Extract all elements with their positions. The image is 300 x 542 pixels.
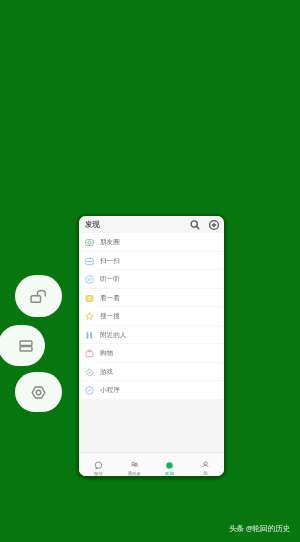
staticText: 我 xyxy=(203,471,208,476)
button[interactable]: 附近的人 xyxy=(79,326,224,344)
staticText: 附近的人 xyxy=(100,331,127,339)
button[interactable]: 发现 xyxy=(152,453,186,476)
button[interactable]: 听一听 xyxy=(79,270,224,288)
button[interactable]: 购物 xyxy=(79,344,224,362)
button[interactable]: 我 xyxy=(188,453,222,476)
staticText: 微信 xyxy=(94,471,103,476)
staticText: 搜一搜 xyxy=(100,312,120,320)
button[interactable]: 朋友圈 xyxy=(79,233,224,251)
button[interactable]: Settings xyxy=(15,372,62,412)
staticText: 头条 @轮回的历史 xyxy=(229,523,291,533)
staticText: 扫一扫 xyxy=(100,257,120,265)
staticText: 游戏 xyxy=(100,368,114,376)
button[interactable]: 看一看 xyxy=(79,289,224,307)
button[interactable]: 游戏 xyxy=(79,363,224,381)
button[interactable]: Add xyxy=(207,218,220,231)
staticText: 发现 xyxy=(165,471,174,476)
button[interactable]: Unlock xyxy=(15,275,62,317)
staticText: 看一看 xyxy=(100,294,120,302)
button[interactable]: 扫一扫 xyxy=(79,252,224,270)
button[interactable]: Split screen xyxy=(0,325,45,366)
staticText: 购物 xyxy=(100,349,114,357)
button[interactable]: 小程序 xyxy=(79,381,224,399)
button[interactable]: 微信 xyxy=(81,453,115,476)
button[interactable]: 搜一搜 xyxy=(79,307,224,325)
staticText: 通讯录 xyxy=(127,471,141,476)
button[interactable]: Search xyxy=(188,218,201,231)
staticText: 小程序 xyxy=(100,386,120,394)
staticText: 听一听 xyxy=(100,275,120,283)
button[interactable]: 通讯录 xyxy=(117,453,151,476)
staticText: 朋友圈 xyxy=(100,238,120,246)
staticText: 发现 xyxy=(85,220,100,229)
